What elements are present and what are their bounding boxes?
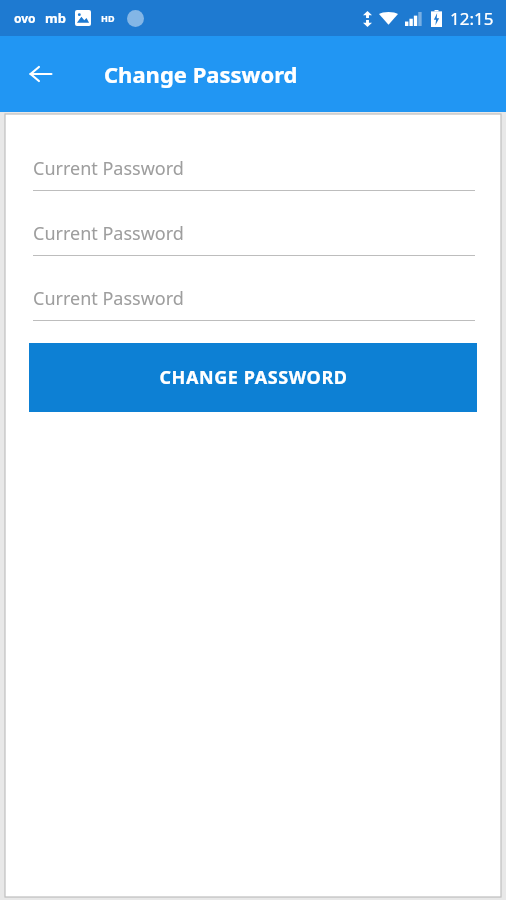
button[interactable]: Current Password (33, 221, 475, 256)
staticText: 12:15 (450, 7, 494, 30)
staticText: Current Password (33, 156, 184, 181)
staticText: CHANGE PASSWORD (159, 365, 348, 390)
staticText: mb (45, 9, 66, 27)
button[interactable]: Current Password (33, 286, 475, 321)
staticText: Current Password (33, 286, 184, 311)
staticText: Current Password (33, 221, 184, 246)
button[interactable]: Current Password (33, 156, 475, 191)
staticText: Change Password (104, 59, 298, 89)
button[interactable]: CHANGE PASSWORD (29, 343, 477, 412)
staticText: ovo (14, 10, 36, 26)
button[interactable]: Back (17, 50, 65, 98)
staticText: HD (101, 12, 115, 24)
